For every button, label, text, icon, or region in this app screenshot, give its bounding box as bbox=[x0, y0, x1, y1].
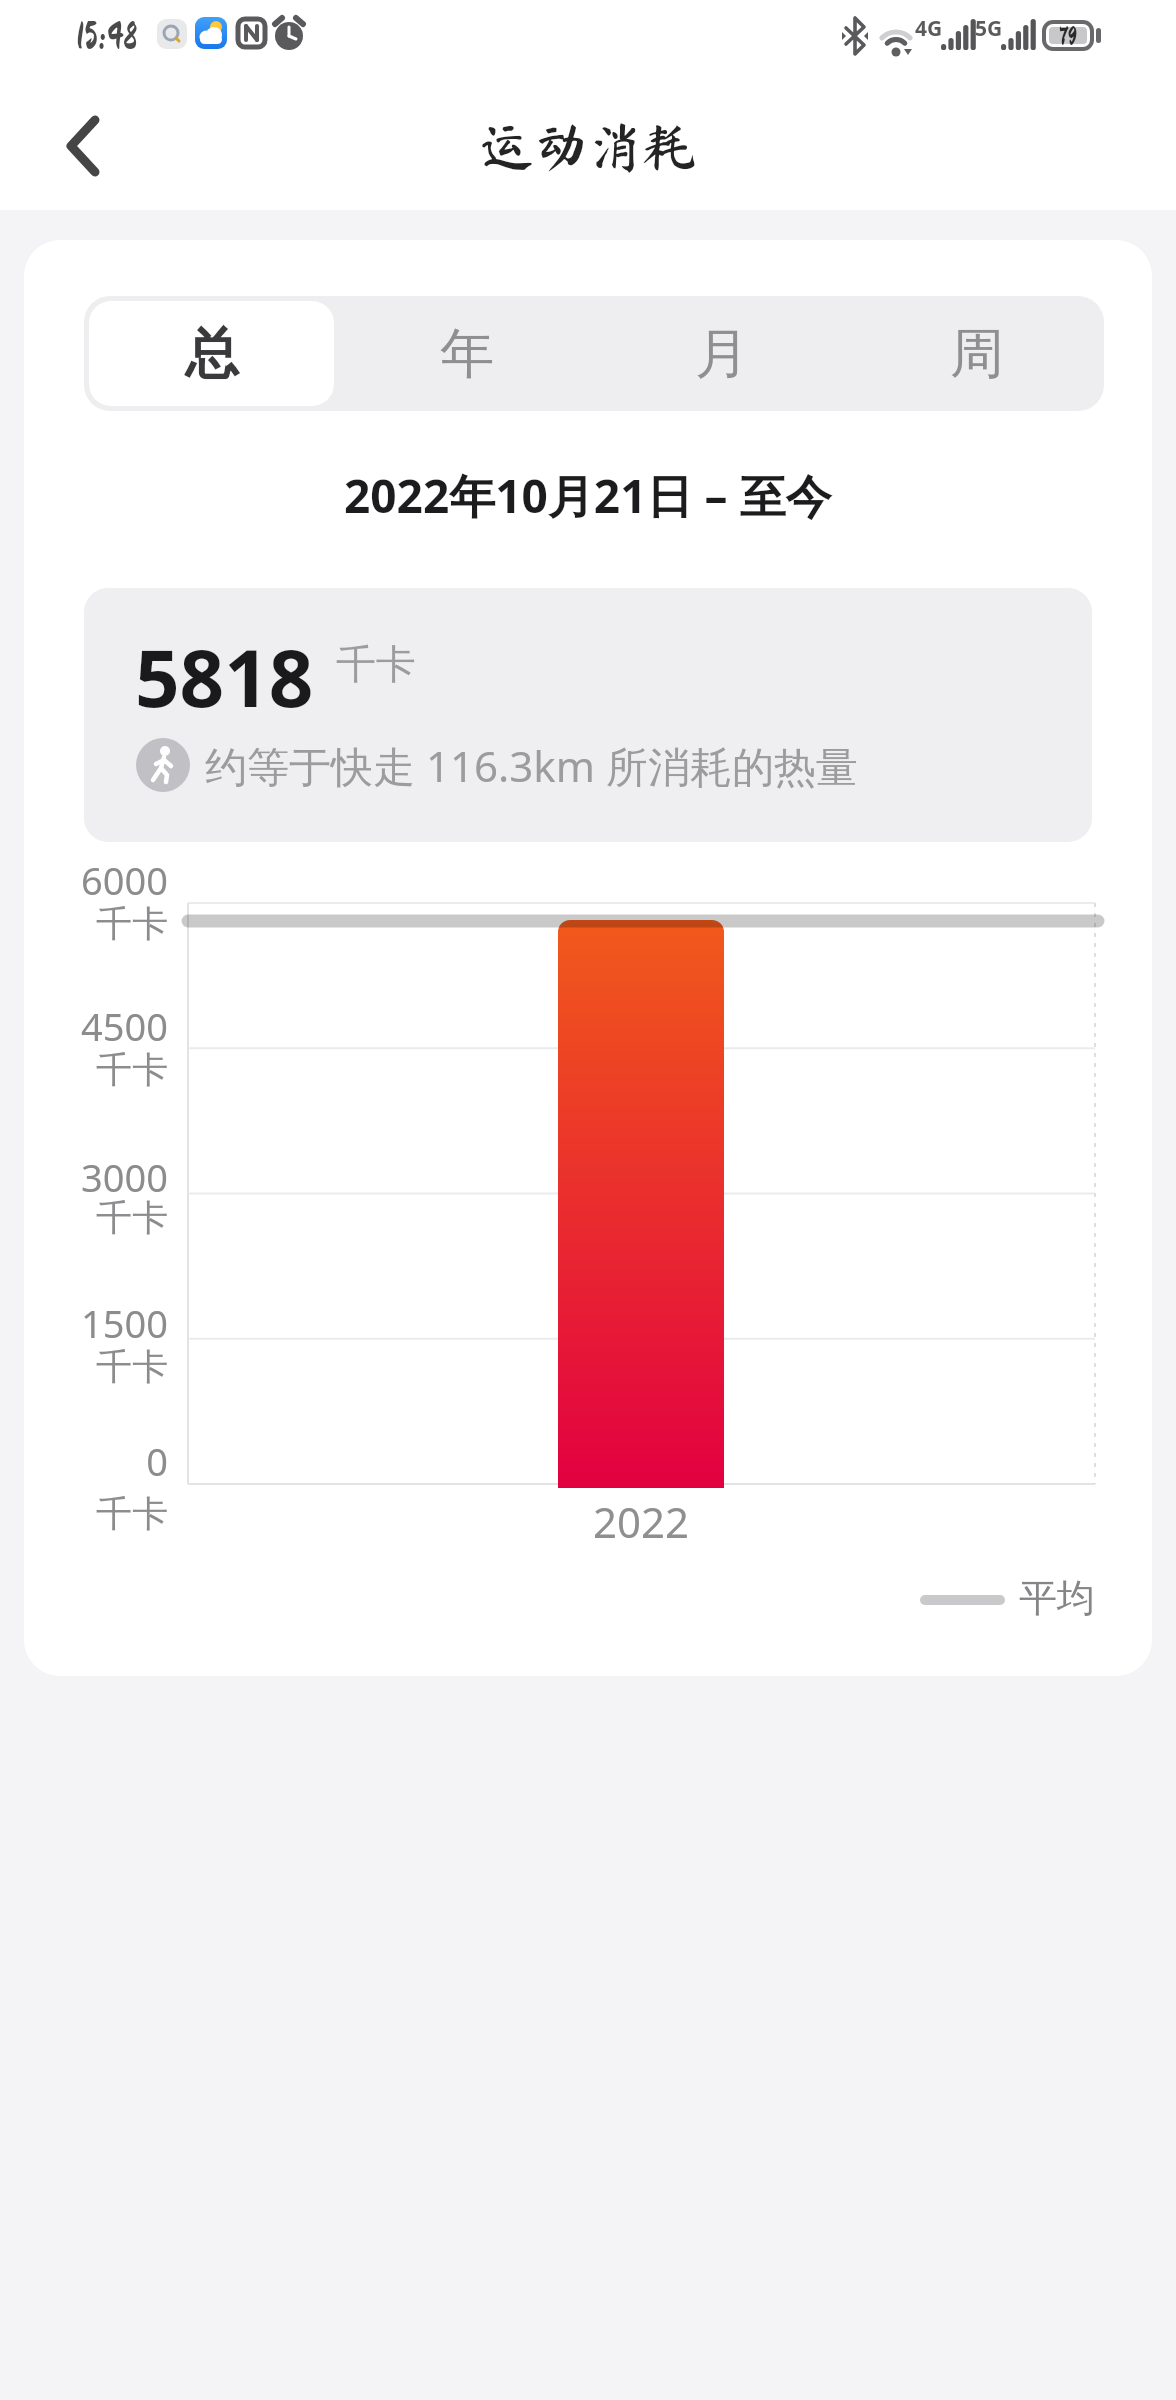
button[interactable]: 月 bbox=[594, 296, 849, 411]
staticText: 约等于快走 116.3km 所消耗的热量 bbox=[205, 737, 858, 794]
staticText: 千卡 bbox=[96, 1344, 168, 1389]
staticText: 千卡 bbox=[336, 639, 416, 689]
staticText: 5G bbox=[975, 14, 1003, 43]
staticText: 15:48 bbox=[76, 18, 138, 56]
staticText: 0 bbox=[146, 1435, 168, 1487]
staticText: 年 bbox=[440, 320, 494, 388]
staticText: 千卡 bbox=[96, 1491, 168, 1536]
staticText: 千卡 bbox=[96, 1047, 168, 1092]
staticText: 总 bbox=[185, 320, 239, 388]
staticText: 月 bbox=[695, 320, 749, 388]
button[interactable]: 周 bbox=[849, 296, 1104, 411]
staticText: 运动消耗 bbox=[480, 119, 696, 173]
staticText: 千卡 bbox=[96, 1195, 168, 1240]
staticText: 平均 bbox=[1019, 1574, 1095, 1622]
staticText: 周 bbox=[950, 320, 1004, 388]
staticText: 4G bbox=[915, 14, 943, 43]
button[interactable]: 年 bbox=[339, 296, 594, 411]
staticText: 6000 bbox=[81, 854, 168, 906]
staticText: 千卡 bbox=[96, 901, 168, 946]
staticText: 1500 bbox=[81, 1297, 168, 1349]
staticText: 4500 bbox=[81, 1000, 168, 1052]
staticText: 3000 bbox=[81, 1151, 168, 1203]
button[interactable]: 总 bbox=[89, 301, 334, 406]
staticText: 2022 bbox=[593, 1493, 690, 1550]
staticText: 5818 bbox=[135, 624, 314, 714]
staticText: 79 bbox=[1059, 24, 1077, 49]
staticText: 2022年10月21日 – 至今 bbox=[344, 464, 832, 527]
